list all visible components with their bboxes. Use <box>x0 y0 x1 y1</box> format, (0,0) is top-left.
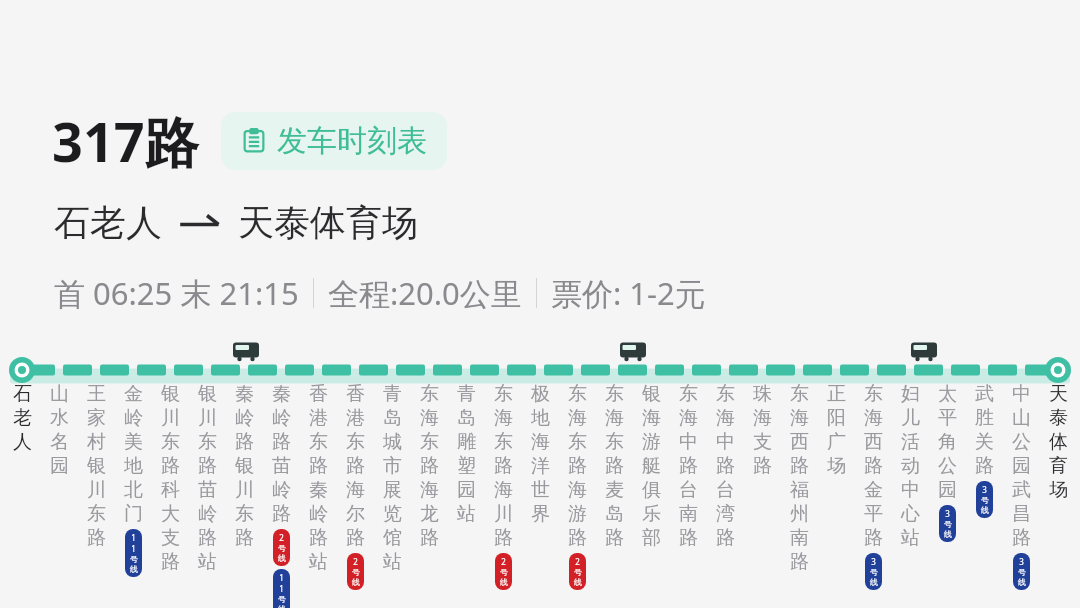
staticText: 体 <box>1049 430 1068 454</box>
button[interactable]: 太 <box>932 382 962 542</box>
staticText: 东 <box>494 382 513 406</box>
staticText: 馆 <box>383 526 402 550</box>
staticText: 东 <box>716 382 735 406</box>
button[interactable]: 东 <box>599 382 629 550</box>
button[interactable]: 石 <box>7 382 37 454</box>
button[interactable]: 银 <box>192 382 222 574</box>
staticText: 路 <box>87 526 106 550</box>
staticText: 路 <box>605 454 624 478</box>
button[interactable]: 东 <box>784 382 814 574</box>
staticText: 心 <box>901 502 920 526</box>
button[interactable]: 金 <box>118 382 148 577</box>
button[interactable]: 东 <box>673 382 703 550</box>
staticText: 岛 <box>383 406 402 430</box>
staticText: 银 <box>161 382 180 406</box>
staticText: 育 <box>1049 454 1068 478</box>
button[interactable]: 正 <box>821 382 851 478</box>
button[interactable]: 香 <box>303 382 333 574</box>
button[interactable]: 中 <box>1006 382 1036 590</box>
staticText: 1 <box>279 583 284 594</box>
staticText: 银 <box>642 382 661 406</box>
staticText: 秦 <box>235 382 254 406</box>
staticText: 路 <box>198 454 217 478</box>
staticText: 王 <box>87 382 106 406</box>
staticText: 港 <box>309 406 328 430</box>
staticText: 号 <box>500 567 508 577</box>
staticText: 路 <box>679 526 698 550</box>
staticText: 南 <box>790 526 809 550</box>
staticText: 珠 <box>753 382 772 406</box>
staticText: 1 <box>131 543 136 554</box>
button[interactable]: 秦 <box>229 382 259 550</box>
staticText: 苗 <box>198 478 217 502</box>
button[interactable]: 东 <box>710 382 740 550</box>
staticText: 路 <box>235 526 254 550</box>
staticText: 路 <box>568 454 587 478</box>
staticText: 岭 <box>124 406 143 430</box>
staticText: 路 <box>1012 526 1031 550</box>
button[interactable]: 发车时刻表 <box>221 112 447 170</box>
button[interactable]: 武 <box>969 382 999 518</box>
button[interactable]: 银 <box>155 382 185 574</box>
staticText: 名 <box>50 430 69 454</box>
staticText: 路 <box>716 526 735 550</box>
staticText: 号 <box>278 543 286 553</box>
staticText: 路 <box>309 454 328 478</box>
staticText: 海 <box>568 406 587 430</box>
staticText: 路 <box>790 454 809 478</box>
staticText: 福 <box>790 478 809 502</box>
staticText: 场 <box>827 454 846 478</box>
staticText: 银 <box>198 382 217 406</box>
staticText: 线 <box>944 529 952 539</box>
button[interactable]: 妇 <box>895 382 925 550</box>
staticText: 发车时刻表 <box>277 122 427 160</box>
button[interactable]: 东 <box>562 382 592 590</box>
staticText: 尔 <box>346 502 365 526</box>
button[interactable]: 青 <box>451 382 481 526</box>
staticText: 岭 <box>235 406 254 430</box>
staticText: 城 <box>383 430 402 454</box>
staticText: 岭 <box>309 502 328 526</box>
staticText: 山 <box>50 382 69 406</box>
staticText: 门 <box>124 502 143 526</box>
staticText: 阳 <box>827 406 846 430</box>
staticText: 川 <box>235 478 254 502</box>
button[interactable]: 极 <box>525 382 555 526</box>
button[interactable]: 王 <box>81 382 111 550</box>
staticText: 园 <box>938 478 957 502</box>
staticText: 东 <box>605 382 624 406</box>
staticText: 天泰体育场 <box>238 200 418 245</box>
staticText: 路 <box>272 430 291 454</box>
staticText: 海 <box>864 406 883 430</box>
staticText: 太 <box>938 382 957 406</box>
staticText: 号 <box>870 567 878 577</box>
button[interactable]: 东 <box>858 382 888 590</box>
staticText: 东 <box>235 502 254 526</box>
staticText: 公 <box>1012 430 1031 454</box>
button[interactable]: 东 <box>414 382 444 550</box>
staticText: 银 <box>87 454 106 478</box>
staticText: 石老人 <box>54 200 162 245</box>
staticText: 中 <box>901 478 920 502</box>
staticText: 站 <box>198 550 217 574</box>
staticText: 路 <box>346 454 365 478</box>
staticText: 2 <box>575 556 580 567</box>
button[interactable]: 东 <box>488 382 518 590</box>
button[interactable]: 银 <box>636 382 666 550</box>
button[interactable]: 珠 <box>747 382 777 478</box>
staticText: 号 <box>574 567 582 577</box>
staticText: 展 <box>383 478 402 502</box>
staticText: 2 <box>353 556 358 567</box>
staticText: 路 <box>716 454 735 478</box>
staticText: 海 <box>642 406 661 430</box>
staticText: 2 <box>279 532 284 543</box>
button[interactable]: 天 <box>1043 382 1073 502</box>
button[interactable]: 青 <box>377 382 407 574</box>
button[interactable]: 山 <box>44 382 74 478</box>
staticText: 港 <box>346 406 365 430</box>
staticText: 部 <box>642 526 661 550</box>
button[interactable]: 香 <box>340 382 370 590</box>
staticText: 海 <box>605 406 624 430</box>
staticText: 3 <box>982 484 987 495</box>
button[interactable]: 秦 <box>266 382 296 608</box>
